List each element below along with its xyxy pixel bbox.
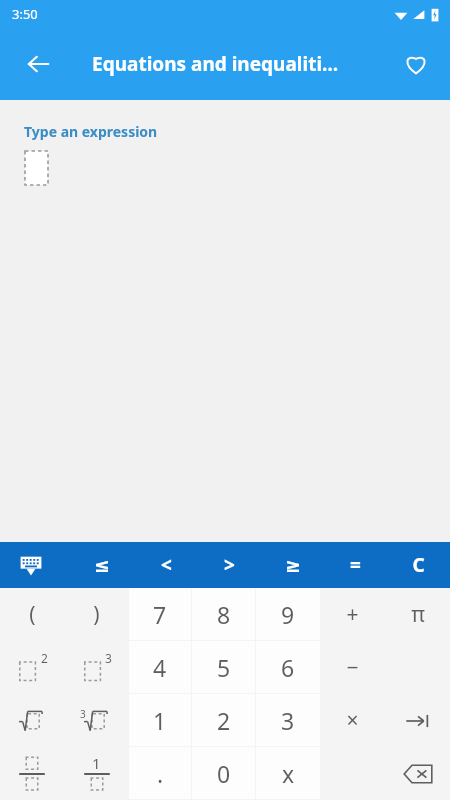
button[interactable]: + [320, 588, 385, 641]
button[interactable]: Hide keyboard [8, 542, 54, 588]
staticText: 6 [281, 652, 295, 683]
button[interactable]: 8 [192, 588, 255, 640]
staticText: − [346, 653, 359, 682]
button[interactable]: . [129, 747, 191, 799]
button[interactable] [385, 694, 450, 747]
button[interactable]: ≤ [70, 542, 134, 588]
button[interactable]: C [387, 542, 450, 588]
button[interactable]: 1 [64, 747, 129, 800]
staticText: 3 [281, 705, 295, 736]
staticText: 9 [281, 599, 295, 630]
staticText: 1 [153, 705, 167, 736]
staticText: 2 [217, 705, 231, 736]
staticText: 1 [92, 753, 101, 773]
staticText: ( [29, 600, 36, 629]
staticText: C [412, 552, 425, 578]
button[interactable]: 6 [256, 641, 320, 693]
button[interactable]: 0 [192, 747, 255, 799]
staticText: 3 [105, 650, 112, 666]
staticText: = [350, 552, 361, 578]
staticText: ≤ [94, 554, 110, 576]
staticText: π [411, 600, 425, 629]
button[interactable]: − [320, 641, 385, 694]
button[interactable]: 3 [64, 641, 129, 694]
staticText: Type an expression [24, 122, 158, 141]
button[interactable] [385, 747, 450, 800]
staticText: 0 [217, 758, 231, 789]
button[interactable]: ) [64, 588, 129, 641]
button[interactable]: ( [0, 588, 64, 641]
button[interactable]: = [324, 542, 387, 588]
button[interactable]: × [320, 694, 385, 747]
button[interactable] [0, 694, 64, 747]
staticText: ≥ [285, 554, 301, 576]
button[interactable]: 4 [129, 641, 191, 693]
button[interactable]: > [198, 542, 261, 588]
button[interactable]: 9 [256, 588, 320, 640]
button[interactable]: 3 [256, 694, 320, 746]
button[interactable]: < [134, 542, 198, 588]
staticText: 4 [153, 652, 167, 683]
staticText: 2 [41, 650, 48, 666]
staticText: Equations and inequaliti… [92, 51, 339, 77]
button[interactable]: x [256, 747, 320, 799]
button[interactable]: 2 [0, 641, 64, 694]
button[interactable]: 7 [129, 588, 191, 640]
staticText: 3:50 [12, 5, 38, 23]
staticText: ) [93, 600, 100, 629]
staticText: + [346, 600, 359, 629]
staticText: > [224, 552, 235, 578]
staticText: 3 [80, 707, 86, 721]
staticText: 5 [217, 652, 231, 683]
button[interactable]: ≥ [261, 542, 324, 588]
button[interactable]: 2 [192, 694, 255, 746]
button[interactable]: 5 [192, 641, 255, 693]
button[interactable] [0, 747, 64, 800]
button[interactable]: Favorite [390, 38, 442, 90]
staticText: 8 [217, 599, 231, 630]
button[interactable]: 3 [64, 694, 129, 747]
button[interactable]: π [385, 588, 450, 641]
staticText: . [157, 758, 164, 789]
staticText: < [161, 552, 172, 578]
staticText: × [346, 706, 359, 735]
staticText: 7 [153, 599, 167, 630]
button[interactable]: 1 [129, 694, 191, 746]
staticText: x [282, 758, 295, 789]
button[interactable]: Back [12, 38, 64, 90]
